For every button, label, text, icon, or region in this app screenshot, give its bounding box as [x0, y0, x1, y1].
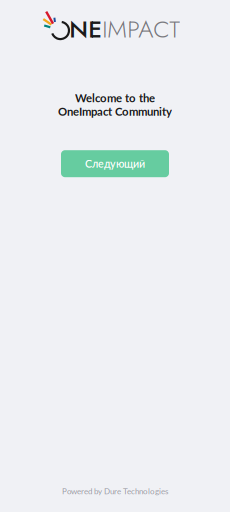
button[interactable]: Следующий [61, 150, 169, 177]
staticText: NE [69, 12, 102, 46]
staticText: OneImpact Community [58, 105, 172, 118]
staticText: Welcome to the [75, 91, 155, 105]
staticText: IMPACT [102, 12, 180, 46]
staticText: Powered by Dure Technologies [62, 486, 168, 496]
staticText: Следующий [85, 157, 145, 170]
